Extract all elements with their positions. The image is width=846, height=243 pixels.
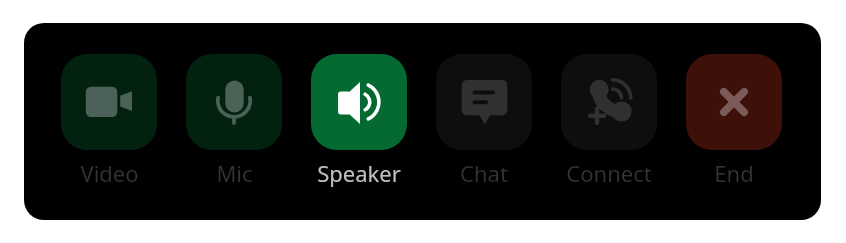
staticText: Video [80,158,139,188]
button[interactable]: Mic [186,54,282,150]
button[interactable]: Chat [436,54,532,150]
staticText: Mic [216,158,253,188]
staticText: Connect [566,158,652,188]
staticText: Speaker [317,158,401,188]
button[interactable]: Speaker [311,54,407,150]
staticText: Chat [460,158,508,188]
button[interactable]: Video [61,54,157,150]
staticText: End [714,158,754,188]
button[interactable]: Connect [561,54,657,150]
button[interactable]: End [686,54,782,150]
